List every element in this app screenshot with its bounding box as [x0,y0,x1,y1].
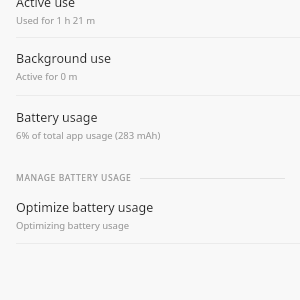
staticText: 6% of total app usage (283 mAh) [16,129,161,142]
staticText: Used for 1 h 21 m [16,14,96,27]
staticText: Battery usage [16,109,98,126]
button[interactable]: Background use [0,38,300,95]
staticText: Active for 0 m [16,70,78,83]
button[interactable]: Battery usage [0,96,300,154]
staticText: Background use [16,50,112,67]
staticText: Optimizing battery usage [16,219,130,232]
button[interactable]: Optimize battery usage [0,199,300,243]
button[interactable]: Active use [0,0,300,37]
staticText: MANAGE BATTERY USAGE [16,172,132,184]
staticText: Active use [16,0,76,11]
staticText: Optimize battery usage [16,199,154,216]
